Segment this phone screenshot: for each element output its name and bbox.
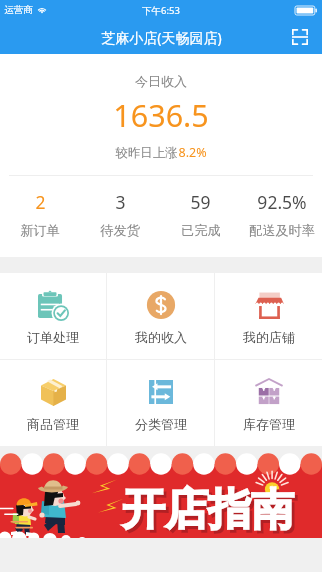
staticText: 3 (115, 190, 126, 214)
button[interactable]: 库存管理 (215, 360, 322, 446)
staticText: 较昨日上涨 (115, 145, 178, 161)
staticText: 新订单 (20, 222, 60, 239)
staticText: 今日收入 (135, 73, 187, 89)
staticText: 59 (190, 190, 211, 214)
button[interactable]: 59 (160, 176, 241, 257)
staticText: 待发货 (100, 222, 140, 239)
staticText: 我的收入 (135, 329, 187, 345)
staticText: 92.5% (257, 190, 307, 214)
button[interactable]: 92.5% (241, 176, 322, 257)
staticText: 已完成 (181, 222, 221, 239)
staticText: 库存管理 (243, 416, 295, 432)
button[interactable]: 开店指南 (0, 464, 322, 538)
button[interactable]: 订单处理 (0, 273, 106, 359)
staticText: 商品管理 (27, 416, 79, 432)
staticText: 开店指南 (122, 483, 294, 537)
button[interactable]: 商品管理 (0, 360, 106, 446)
staticText: 2 (35, 190, 46, 214)
button[interactable]: 2 (0, 176, 80, 257)
staticText: 1636.5 (113, 94, 209, 136)
staticText: 开店指南 (125, 486, 297, 540)
button[interactable]: Scan QR code (286, 23, 314, 51)
button[interactable]: 我的收入 (107, 273, 214, 359)
staticText: 运营商 (4, 4, 33, 16)
staticText: 8.2% (178, 144, 207, 161)
staticText: 分类管理 (135, 416, 187, 432)
staticText: 我的店铺 (243, 329, 295, 345)
button[interactable]: 分类管理 (107, 360, 214, 446)
staticText: 芝麻小店(天畅园店) (101, 28, 222, 47)
staticText: 下午6:53 (142, 4, 180, 17)
staticText: 订单处理 (27, 329, 79, 345)
staticText: 配送及时率 (249, 222, 315, 239)
button[interactable]: 3 (80, 176, 160, 257)
button[interactable]: 我的店铺 (215, 273, 322, 359)
